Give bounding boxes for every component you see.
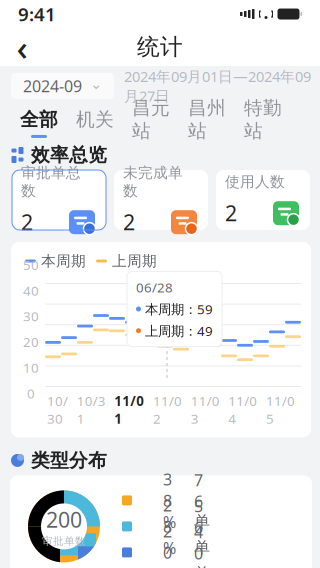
staticText: 06/28 bbox=[136, 278, 173, 296]
staticText: 本周期 bbox=[41, 252, 86, 270]
staticText: 11/02 bbox=[153, 392, 182, 427]
staticText: 特勤站 bbox=[244, 97, 282, 142]
staticText: 76单 bbox=[194, 469, 210, 531]
button[interactable]: 全部 bbox=[11, 106, 67, 140]
staticText: 10/31 bbox=[77, 392, 106, 427]
staticText: 38% bbox=[163, 469, 176, 532]
staticText: 40单 bbox=[194, 521, 210, 568]
staticText: 50 bbox=[23, 256, 39, 274]
staticText: 28% bbox=[163, 495, 176, 558]
staticText: 类型分布 bbox=[31, 449, 107, 472]
button[interactable]: 使用人数 bbox=[216, 170, 310, 230]
button[interactable]: 审批单总数 bbox=[12, 170, 106, 230]
staticText: 审批单总数 bbox=[21, 164, 81, 200]
staticText: 统计 bbox=[137, 33, 183, 61]
staticText: 使用人数 bbox=[225, 173, 285, 191]
button[interactable]: 特勤站 bbox=[235, 106, 291, 140]
staticText: 2 bbox=[21, 208, 33, 236]
staticText: 11/01 bbox=[114, 392, 144, 427]
button[interactable]: 未完成单数 bbox=[114, 170, 208, 230]
staticText: 审批单数 bbox=[42, 534, 86, 548]
staticText: 上周期 bbox=[112, 252, 157, 270]
staticText: 20 bbox=[23, 333, 39, 351]
staticText: 10/30 bbox=[47, 392, 68, 427]
staticText: 200 bbox=[46, 505, 82, 533]
staticText: 56单 bbox=[194, 495, 210, 557]
staticText: 2 bbox=[225, 199, 237, 227]
staticText: ‹ bbox=[16, 24, 27, 70]
staticText: 2024年09月01日—2024年09月27日 bbox=[124, 66, 311, 105]
staticText: 机关 bbox=[76, 108, 114, 131]
staticText: 效率总览 bbox=[31, 143, 107, 166]
staticText: 20% bbox=[163, 521, 176, 568]
staticText: 11/03 bbox=[191, 392, 220, 427]
button[interactable]: 2024-09 bbox=[11, 73, 114, 99]
staticText: 全部 bbox=[20, 108, 58, 131]
button[interactable]: 昌州站 bbox=[179, 106, 235, 140]
button[interactable]: 返回 bbox=[0, 29, 44, 65]
staticText: 11/04 bbox=[228, 392, 257, 427]
staticText: 昌元站 bbox=[132, 97, 170, 142]
staticText: 10 bbox=[23, 359, 39, 376]
staticText: 2 bbox=[123, 208, 135, 236]
staticText: 昌州站 bbox=[188, 97, 226, 142]
staticText: 40 bbox=[23, 282, 39, 299]
staticText: 未完成单数 bbox=[123, 164, 183, 200]
staticText: 0 bbox=[27, 384, 35, 402]
staticText: 11/05 bbox=[266, 392, 295, 427]
staticText: ⌄ bbox=[90, 76, 102, 92]
staticText: 2024-09 bbox=[23, 75, 82, 97]
staticText: 本周期：59 bbox=[145, 300, 213, 318]
staticText: 9:41 bbox=[18, 2, 56, 26]
button[interactable]: 机关 bbox=[67, 106, 123, 140]
staticText: 上周期：49 bbox=[145, 322, 213, 340]
button[interactable]: 昌元站 bbox=[123, 106, 179, 140]
staticText: 30 bbox=[23, 307, 39, 325]
